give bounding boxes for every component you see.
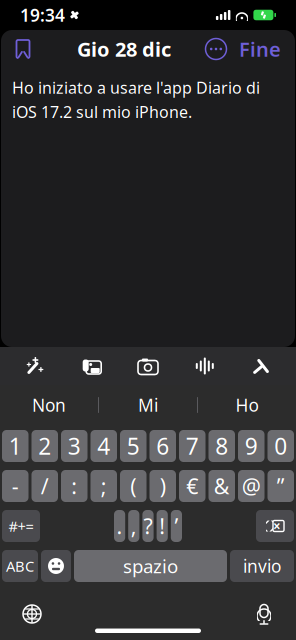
button[interactable]: 7 — [179, 430, 205, 462]
button[interactable]: € — [179, 470, 205, 502]
button[interactable]: #+= — [2, 510, 40, 542]
button[interactable]: 0 — [267, 430, 294, 462]
button[interactable]: Camera — [120, 349, 176, 383]
staticText: Fine — [239, 36, 281, 62]
button[interactable]: ’ — [171, 510, 182, 542]
staticText: 3 — [68, 431, 81, 461]
staticText: & — [214, 472, 230, 500]
staticText: 7 — [186, 431, 199, 461]
button[interactable]: 6 — [149, 430, 176, 462]
button[interactable]: 5 — [120, 430, 146, 462]
staticText: ) — [160, 472, 166, 500]
button[interactable]: 3 — [61, 430, 87, 462]
staticText: 2 — [38, 431, 51, 461]
button[interactable]: , — [128, 510, 139, 542]
button[interactable]: : — [61, 470, 87, 502]
staticText: Ho — [235, 393, 258, 416]
button[interactable]: ; — [90, 470, 117, 502]
button[interactable]: 9 — [238, 430, 264, 462]
staticText: 6 — [156, 431, 169, 461]
staticText: ABC — [6, 556, 34, 576]
staticText: Ho iniziato a usare l'app Diario di iOS … — [12, 77, 260, 122]
button[interactable]: & — [208, 470, 235, 502]
staticText: ! — [159, 512, 165, 540]
staticText: ? — [143, 512, 152, 540]
staticText: 8 — [215, 431, 228, 461]
staticText: ’ — [174, 512, 178, 540]
button[interactable]: Suggestions — [6, 349, 63, 383]
button[interactable]: Delete — [256, 510, 294, 542]
button[interactable]: 4 — [90, 430, 117, 462]
staticText: × — [273, 517, 281, 535]
button[interactable]: 8 — [208, 430, 235, 462]
button[interactable]: Change keyboard — [10, 594, 54, 634]
staticText: invio — [243, 554, 281, 577]
button[interactable]: Add location — [233, 349, 290, 383]
button[interactable]: ABC — [2, 550, 38, 582]
button[interactable]: 2 — [31, 430, 58, 462]
staticText: @ — [242, 472, 261, 500]
button[interactable]: Dictate — [242, 594, 286, 634]
staticText: , — [131, 512, 137, 540]
staticText: #+= — [8, 516, 33, 536]
staticText: ; — [101, 472, 107, 500]
staticText: - — [12, 472, 19, 500]
staticText: 1 — [9, 431, 22, 461]
staticText: Mi — [138, 393, 158, 416]
button[interactable]: ? — [142, 510, 154, 542]
staticText: Non — [32, 393, 66, 416]
staticText: spazio — [123, 554, 178, 578]
button[interactable]: Fine — [239, 32, 281, 66]
staticText: 19:34 — [20, 3, 65, 26]
staticText: ” — [277, 472, 285, 500]
staticText: : — [71, 472, 77, 500]
button[interactable]: @ — [238, 470, 264, 502]
button[interactable]: / — [31, 470, 58, 502]
button[interactable]: Non — [0, 385, 98, 425]
button[interactable]: Bookmark — [1, 30, 45, 68]
button[interactable]: Mi — [99, 385, 197, 425]
staticText: € — [186, 472, 198, 500]
button[interactable]: 1 — [2, 430, 28, 462]
button[interactable]: ( — [120, 470, 146, 502]
staticText: . — [117, 512, 123, 540]
button[interactable]: Photo library — [63, 349, 120, 383]
staticText: 4 — [97, 431, 110, 461]
button[interactable]: Ho — [198, 385, 296, 425]
button[interactable]: - — [2, 470, 28, 502]
button[interactable]: invio — [230, 550, 294, 582]
staticText: 5 — [127, 431, 140, 461]
staticText: ( — [130, 472, 136, 500]
button[interactable]: ) — [149, 470, 176, 502]
staticText: / — [41, 472, 49, 500]
staticText: 9 — [245, 431, 258, 461]
button[interactable]: ” — [267, 470, 294, 502]
button[interactable]: Record audio — [176, 349, 233, 383]
button[interactable]: . — [114, 510, 125, 542]
button[interactable]: More options — [203, 32, 229, 66]
button[interactable]: Emoji — [41, 550, 71, 582]
button[interactable]: spazio — [74, 550, 227, 582]
button[interactable]: ! — [157, 510, 168, 542]
staticText: Gio 28 dic — [77, 36, 171, 62]
staticText: 0 — [274, 431, 287, 461]
